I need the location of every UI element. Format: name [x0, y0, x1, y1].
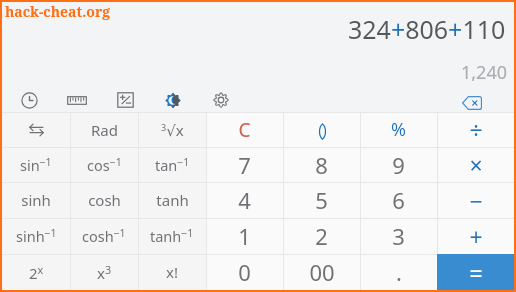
button[interactable]: History — [15, 86, 43, 114]
button[interactable]: 6 — [360, 182, 437, 218]
staticText: 0 — [238, 257, 251, 287]
button[interactable]: tanh — [138, 182, 206, 218]
staticText: sinh — [21, 190, 51, 210]
button[interactable]: 1 — [206, 218, 283, 254]
staticText: 5 — [315, 185, 328, 215]
staticText: tanh−1 — [150, 226, 194, 246]
staticText: 9 — [392, 150, 405, 180]
staticText: − — [469, 185, 483, 216]
staticText: 00 — [309, 257, 335, 287]
button[interactable]: % — [360, 112, 437, 147]
staticText: ÷ — [469, 114, 483, 145]
button[interactable]: x3 — [70, 254, 138, 290]
button[interactable]: sinh−1 — [2, 218, 70, 254]
button[interactable]: 3√x — [138, 112, 206, 147]
button[interactable]: × — [437, 147, 514, 182]
button[interactable] — [2, 112, 70, 147]
staticText: cos−1 — [87, 155, 122, 175]
button[interactable]: cosh — [70, 182, 138, 218]
staticText: 2 — [315, 221, 328, 251]
button[interactable]: tan−1 — [138, 147, 206, 182]
staticText: x3 — [97, 262, 112, 283]
staticText: sinh−1 — [16, 226, 57, 246]
staticText: hack-cheat.org — [5, 2, 111, 21]
button[interactable]: cosh−1 — [70, 218, 138, 254]
button[interactable]: 8 — [283, 147, 360, 182]
staticText: 7 — [238, 150, 251, 180]
button[interactable]: Theme — [159, 86, 187, 114]
staticText: sin−1 — [20, 155, 52, 175]
button[interactable]: 9 — [360, 147, 437, 182]
staticText: tan−1 — [155, 155, 190, 175]
staticText: cosh−1 — [82, 226, 126, 246]
button[interactable]: Settings — [207, 86, 235, 114]
staticText: % — [391, 117, 406, 142]
button[interactable]: 2x — [2, 254, 70, 290]
button[interactable]: − — [437, 182, 514, 218]
staticText: × — [469, 149, 483, 180]
staticText: + — [469, 221, 483, 252]
staticText: 324+806+110 — [348, 12, 506, 46]
button[interactable]: tanh−1 — [138, 218, 206, 254]
button[interactable]: sinh — [2, 182, 70, 218]
button[interactable]: 5 — [283, 182, 360, 218]
button[interactable]: 00 — [283, 254, 360, 290]
button[interactable]: . — [360, 254, 437, 290]
button[interactable]: sin−1 — [2, 147, 70, 182]
button[interactable]: = — [437, 254, 514, 290]
button[interactable]: 0 — [206, 254, 283, 290]
staticText: Rad — [91, 120, 118, 140]
staticText: tanh — [156, 190, 189, 210]
button[interactable]: Rad — [70, 112, 138, 147]
staticText: = — [469, 257, 483, 288]
staticText: C — [238, 117, 251, 143]
staticText: 2x — [29, 262, 44, 283]
button[interactable]: cos−1 — [70, 147, 138, 182]
staticText: 8 — [315, 150, 328, 180]
staticText: 4 — [238, 185, 251, 215]
button[interactable]: 2 — [283, 218, 360, 254]
button[interactable]: Backspace — [457, 90, 487, 116]
button[interactable]: C — [206, 112, 283, 147]
staticText: . — [396, 257, 402, 287]
button[interactable]: x! — [138, 254, 206, 290]
staticText: cosh — [88, 190, 121, 210]
button[interactable]: 3 — [360, 218, 437, 254]
button[interactable]: + — [437, 218, 514, 254]
staticText: x! — [166, 262, 178, 282]
staticText: 1 — [238, 221, 251, 251]
button[interactable]: ÷ — [437, 112, 514, 147]
staticText: 6 — [392, 185, 405, 215]
staticText: 3 — [392, 221, 405, 251]
button[interactable] — [283, 112, 360, 147]
button[interactable]: Unit converter — [63, 86, 91, 114]
button[interactable]: 7 — [206, 147, 283, 182]
button[interactable]: Sign change — [111, 86, 139, 114]
staticText: 1,240 — [461, 60, 508, 85]
button[interactable]: 4 — [206, 182, 283, 218]
staticText: 3√x — [161, 120, 184, 140]
